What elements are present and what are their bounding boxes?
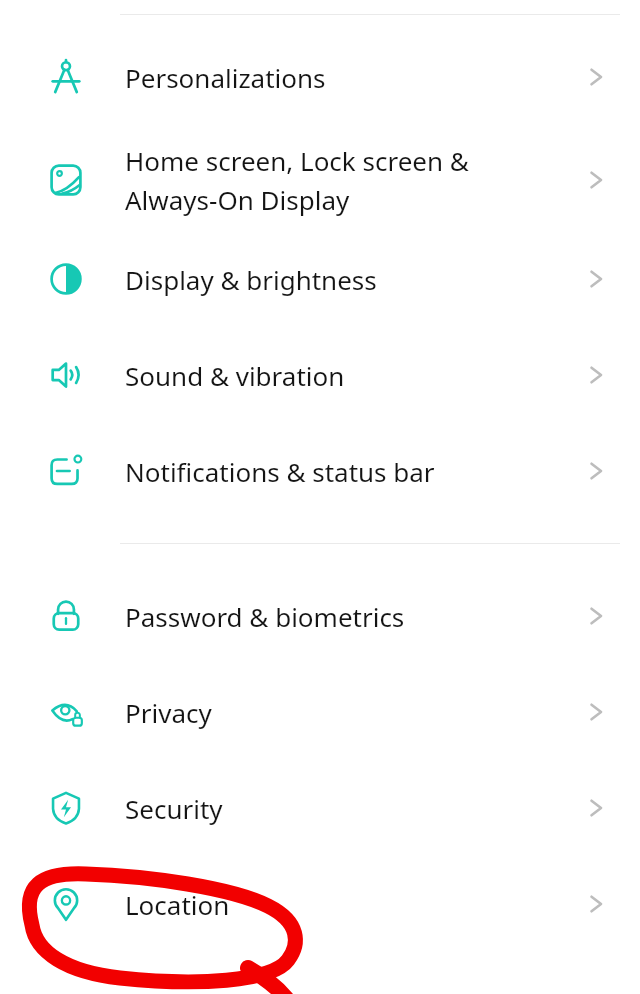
staticText: Password & biometrics: [125, 599, 562, 634]
staticText: Security: [125, 791, 562, 826]
button[interactable]: Notifications & status bar: [0, 438, 640, 504]
button[interactable]: Password & biometrics: [0, 583, 640, 649]
staticText: Notifications & status bar: [125, 454, 562, 489]
button[interactable]: Sound & vibration: [0, 342, 640, 408]
button[interactable]: Personalizations: [0, 44, 640, 110]
button[interactable]: Security: [0, 775, 640, 841]
staticText: Privacy: [125, 695, 562, 730]
button[interactable]: Privacy: [0, 679, 640, 745]
staticText: Location: [125, 887, 562, 922]
button[interactable]: Location: [0, 871, 640, 937]
button[interactable]: Home screen, Lock screen & Always-On Dis…: [0, 140, 640, 220]
staticText: Personalizations: [125, 60, 562, 95]
button[interactable]: Display & brightness: [0, 246, 640, 312]
staticText: Home screen, Lock screen & Always-On Dis…: [125, 143, 562, 218]
staticText: Display & brightness: [125, 262, 562, 297]
staticText: Sound & vibration: [125, 358, 562, 393]
